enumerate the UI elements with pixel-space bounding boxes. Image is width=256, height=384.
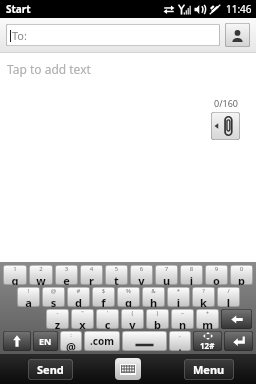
staticText: 7 xyxy=(155,265,178,273)
staticText: + xyxy=(196,309,219,317)
staticText: z xyxy=(46,317,69,329)
staticText: 12# xyxy=(200,340,215,351)
staticText: ( xyxy=(121,309,144,317)
button[interactable]: & xyxy=(142,287,165,307)
button[interactable]: ) xyxy=(146,309,169,329)
button[interactable]: , xyxy=(169,331,191,351)
button[interactable]: 4 xyxy=(80,265,103,285)
button[interactable]: " xyxy=(71,309,94,329)
staticText: t xyxy=(105,273,128,285)
staticText: e xyxy=(55,273,78,285)
button[interactable]: Send xyxy=(28,359,73,380)
button[interactable]: 5 xyxy=(105,265,128,285)
staticText: 4 xyxy=(80,265,103,273)
staticText: k xyxy=(192,295,215,307)
staticText: - xyxy=(46,309,69,317)
button[interactable]: 7 xyxy=(155,265,178,285)
button[interactable]: Tap to add text xyxy=(0,53,256,97)
other: Connectivity xyxy=(209,4,221,15)
button[interactable]: 6 xyxy=(130,265,153,285)
staticText: To: xyxy=(12,28,27,43)
staticText: , xyxy=(169,331,191,339)
staticText: @ xyxy=(42,287,65,295)
button[interactable]: ~ xyxy=(171,309,194,329)
button[interactable]: / xyxy=(217,287,240,307)
staticText: n xyxy=(171,317,194,329)
staticText: # xyxy=(67,287,90,295)
other: Sync xyxy=(163,4,175,15)
staticText: Start xyxy=(6,2,31,16)
staticText: ' xyxy=(96,309,119,317)
button[interactable]: Shift xyxy=(3,331,31,351)
staticText: h xyxy=(142,295,165,307)
button[interactable] xyxy=(122,331,167,351)
staticText: Menu xyxy=(193,362,225,377)
staticText: : xyxy=(60,331,82,339)
staticText: ) xyxy=(146,309,169,317)
staticText: b xyxy=(146,317,169,329)
button[interactable]: ! xyxy=(17,287,40,307)
button[interactable]: ' xyxy=(96,309,119,329)
button[interactable]: $ xyxy=(92,287,115,307)
button[interactable]: % xyxy=(117,287,140,307)
button[interactable]: 0 xyxy=(230,265,253,285)
button[interactable]: 2 xyxy=(29,265,53,285)
button[interactable]: 9 xyxy=(205,265,228,285)
button[interactable]: .com xyxy=(84,331,120,351)
button[interactable]: # xyxy=(67,287,90,307)
button[interactable]: + xyxy=(196,309,219,329)
staticText: ~ xyxy=(171,309,194,317)
button[interactable]: To: xyxy=(6,24,220,46)
button[interactable]: Keyboard xyxy=(115,358,141,380)
button[interactable]: - xyxy=(46,309,69,329)
staticText: @ xyxy=(60,339,82,351)
button[interactable]: Enter xyxy=(224,331,253,351)
button[interactable]: EN xyxy=(33,331,58,351)
staticText: r xyxy=(80,273,103,285)
button[interactable]: 8 xyxy=(180,265,203,285)
button[interactable]: Symbols xyxy=(193,331,222,351)
staticText: 0/160 xyxy=(214,97,238,109)
staticText: 9 xyxy=(205,265,228,273)
button[interactable]: 1 xyxy=(3,265,27,285)
staticText: m xyxy=(196,317,219,329)
staticText: q xyxy=(3,273,27,285)
staticText: EN xyxy=(39,335,52,347)
staticText: / xyxy=(217,287,240,295)
button[interactable]: Backspace xyxy=(221,309,252,329)
staticText: * xyxy=(167,287,190,295)
staticText: g xyxy=(117,295,140,307)
staticText: w xyxy=(29,273,53,285)
staticText: a xyxy=(17,295,40,307)
staticText: u xyxy=(155,273,178,285)
staticText: 3 xyxy=(55,265,78,273)
staticText: ! xyxy=(17,287,40,295)
button[interactable]: Menu xyxy=(184,359,234,380)
staticText: s xyxy=(42,295,65,307)
button[interactable]: ? xyxy=(192,287,215,307)
staticText: l xyxy=(217,295,240,307)
staticText: 11:46 xyxy=(226,2,252,16)
button[interactable]: 3 xyxy=(55,265,78,285)
staticText: $ xyxy=(92,287,115,295)
staticText: & xyxy=(142,287,165,295)
other: Sound xyxy=(194,4,206,15)
button[interactable]: @ xyxy=(42,287,65,307)
button[interactable]: Choose contact xyxy=(225,23,250,47)
staticText: i xyxy=(180,273,203,285)
staticText: f xyxy=(92,295,115,307)
staticText: x xyxy=(71,317,94,329)
staticText: ? xyxy=(192,287,215,295)
button[interactable]: ( xyxy=(121,309,144,329)
button[interactable]: * xyxy=(167,287,190,307)
staticText: " xyxy=(71,309,94,317)
staticText: p xyxy=(230,273,253,285)
staticText: o xyxy=(205,273,228,285)
other: Signal xyxy=(178,4,191,15)
button[interactable]: : xyxy=(60,331,82,351)
staticText: c xyxy=(96,317,119,329)
staticText: d xyxy=(67,295,90,307)
staticText: 6 xyxy=(130,265,153,273)
button[interactable]: Add attachment xyxy=(211,112,240,140)
staticText: . xyxy=(169,339,191,351)
